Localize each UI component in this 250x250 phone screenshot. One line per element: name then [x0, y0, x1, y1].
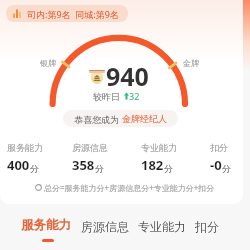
staticText: 恭喜您成为: [74, 113, 122, 125]
button[interactable]: Ranking: [6, 5, 128, 22]
button[interactable]: 服务能力: [21, 217, 71, 242]
other: Score explanation: [35, 184, 42, 191]
other: Ranking: [13, 9, 21, 18]
staticText: 房源信息: [81, 219, 129, 234]
button[interactable]: 服务能力: [7, 142, 43, 174]
staticText: 金牌: [183, 58, 199, 68]
staticText: 分: [164, 163, 173, 174]
button[interactable]: 扣分: [210, 142, 231, 174]
staticText: 专业能力: [138, 219, 186, 234]
staticText: 分: [95, 163, 104, 174]
staticText: 940: [106, 59, 149, 93]
staticText: 专业能力: [141, 142, 177, 153]
button[interactable]: 专业能力: [138, 219, 186, 234]
staticText: 司内:第9名 同城:第9名: [27, 8, 119, 20]
staticText: 182: [141, 156, 164, 174]
staticText: 分: [222, 163, 231, 174]
button[interactable]: 扣分: [195, 219, 219, 234]
staticText: 银牌: [40, 58, 56, 68]
staticText: 总分=服务能力分+房源信息分+专业能力分+扣分: [44, 182, 215, 193]
staticText: 32: [129, 90, 140, 102]
button[interactable]: 专业能力: [141, 142, 177, 174]
button[interactable]: 房源信息: [72, 142, 108, 174]
staticText: 400: [7, 156, 30, 174]
staticText: 分: [30, 163, 39, 174]
button[interactable]: 房源信息: [81, 219, 129, 234]
staticText: 扣分: [195, 219, 219, 234]
staticText: -0: [210, 156, 222, 174]
staticText: 房源信息: [72, 142, 108, 153]
staticText: 金牌经纪人: [122, 113, 167, 124]
staticText: 服务能力: [7, 142, 43, 153]
staticText: 较昨日: [93, 91, 120, 102]
staticText: 服务能力: [21, 217, 71, 233]
staticText: 358: [72, 156, 95, 174]
staticText: 扣分: [210, 142, 228, 153]
button[interactable]: 恭喜您成为: [63, 110, 178, 127]
